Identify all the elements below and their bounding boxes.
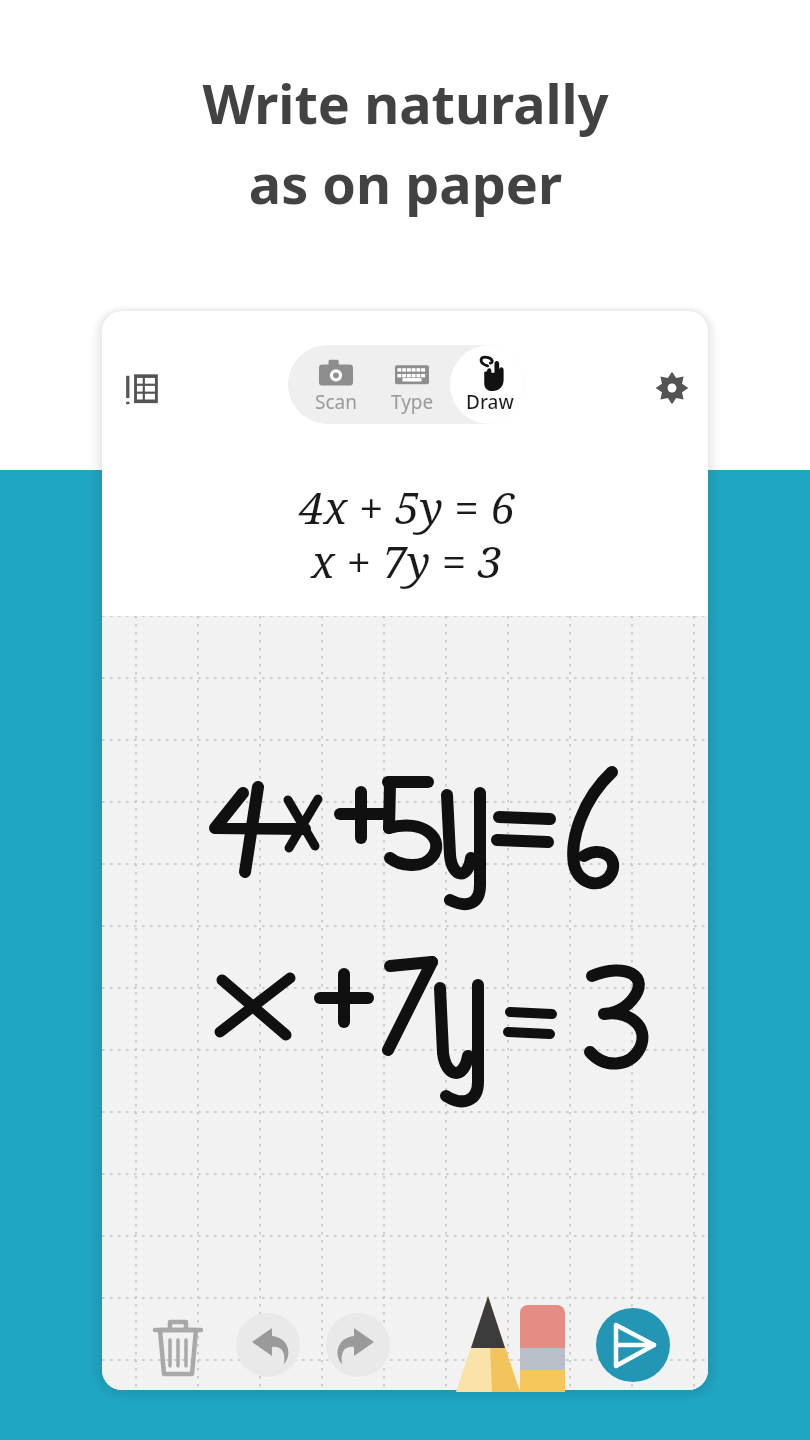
button[interactable]: History [116, 362, 168, 414]
button[interactable]: Send [596, 1308, 671, 1383]
button[interactable]: Settings [646, 362, 698, 414]
button[interactable]: Type [374, 345, 450, 424]
button[interactable]: Undo [236, 1313, 300, 1377]
button[interactable]: Scan [298, 345, 374, 424]
staticText: Type [391, 389, 434, 415]
button[interactable]: Draw [450, 345, 525, 424]
staticText: Draw [466, 389, 514, 415]
staticText: 4x + 5y = 6 [299, 477, 515, 537]
button[interactable]: Eraser [514, 1290, 576, 1390]
staticText: Write naturally as on paper [202, 66, 609, 220]
button[interactable]: Pencil [452, 1290, 530, 1390]
staticText: x + 7y = 3 [311, 531, 503, 591]
button[interactable]: Redo [326, 1313, 390, 1377]
button[interactable]: Delete [146, 1313, 210, 1377]
staticText: Scan [315, 389, 357, 415]
